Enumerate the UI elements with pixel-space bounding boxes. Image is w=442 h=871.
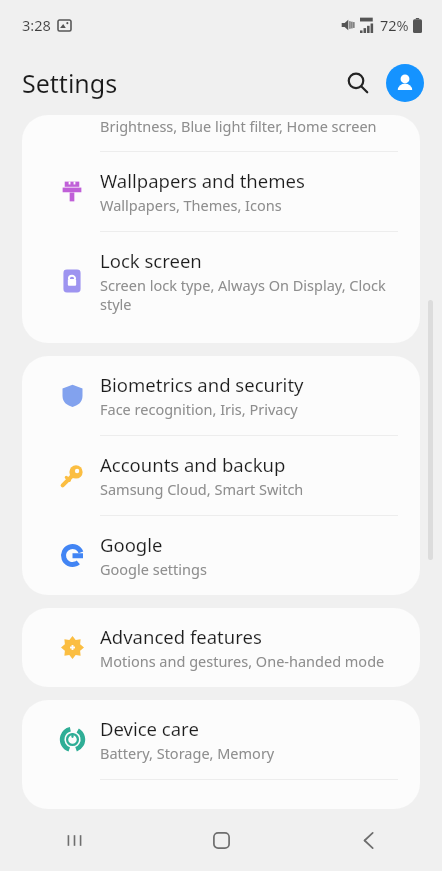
button[interactable]: Account	[386, 64, 424, 102]
staticText: Wallpapers, Themes, Icons	[100, 195, 282, 215]
staticText: Lock screen	[100, 248, 202, 273]
button[interactable]: Back	[295, 809, 442, 871]
staticText: Wallpapers and themes	[100, 168, 305, 193]
staticText: Face recognition, Iris, Privacy	[100, 399, 298, 419]
staticText: Advanced features	[100, 624, 262, 649]
staticText: Accounts and backup	[100, 452, 286, 477]
button[interactable]: Google	[22, 516, 420, 595]
button[interactable]: Advanced features	[22, 608, 420, 687]
button[interactable]: Home	[148, 809, 295, 871]
staticText: Motions and gestures, One-handed mode	[100, 651, 385, 671]
staticText: Device care	[100, 716, 199, 741]
button[interactable]: Brightness, Blue light filter, Home scre…	[22, 115, 420, 151]
button[interactable]: Wallpapers and themes	[22, 152, 420, 231]
button[interactable]: Device care	[22, 700, 420, 779]
staticText: Screen lock type, Always On Display, Clo…	[100, 275, 386, 314]
staticText: 3:28	[22, 15, 51, 35]
button[interactable]: Lock screen	[22, 232, 420, 330]
staticText: Settings	[22, 66, 118, 100]
button[interactable]: Search	[336, 61, 380, 105]
staticText: Google	[100, 532, 163, 557]
staticText: Samsung Cloud, Smart Switch	[100, 479, 304, 499]
staticText: 72%	[380, 15, 409, 35]
staticText: Brightness, Blue light filter, Home scre…	[100, 116, 377, 136]
button[interactable]: Recents	[0, 809, 148, 871]
staticText: Battery, Storage, Memory	[100, 743, 275, 763]
button[interactable]: Accounts and backup	[22, 436, 420, 515]
button[interactable]: Biometrics and security	[22, 356, 420, 435]
staticText: Google settings	[100, 559, 207, 579]
staticText: Biometrics and security	[100, 372, 304, 397]
